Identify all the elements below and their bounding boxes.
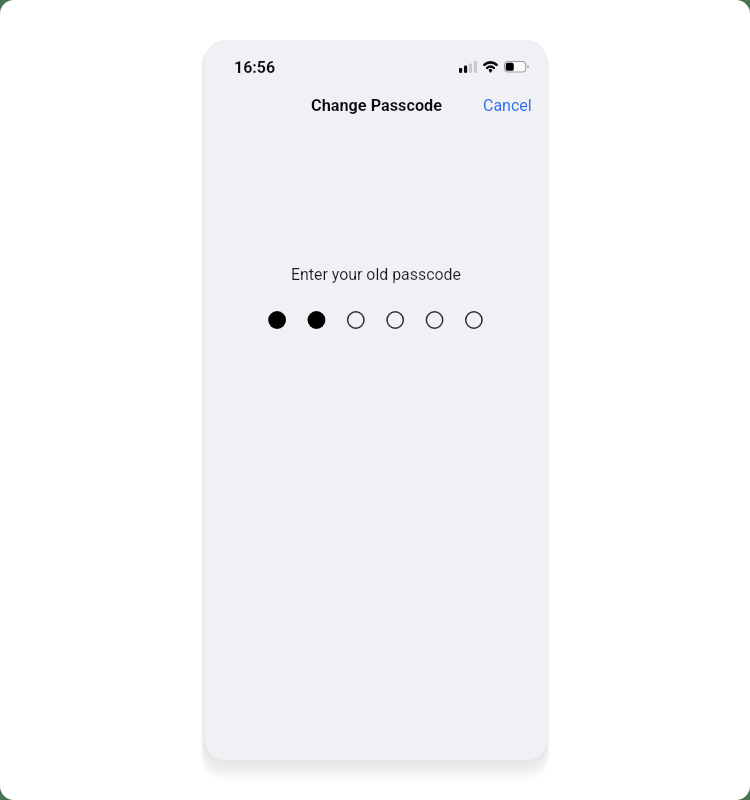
other: Battery — [504, 61, 529, 73]
other: Cellular signal — [459, 61, 477, 73]
staticText: 16:56 — [234, 58, 276, 77]
button[interactable]: Passcode field, 2 of 6 digits entered — [269, 296, 484, 344]
other: Wi-Fi — [483, 61, 498, 73]
staticText: Change Passcode — [311, 96, 442, 115]
staticText: Cancel — [483, 96, 532, 115]
staticText: Enter your old passcode — [291, 265, 461, 284]
button[interactable]: Cancel — [468, 89, 547, 122]
